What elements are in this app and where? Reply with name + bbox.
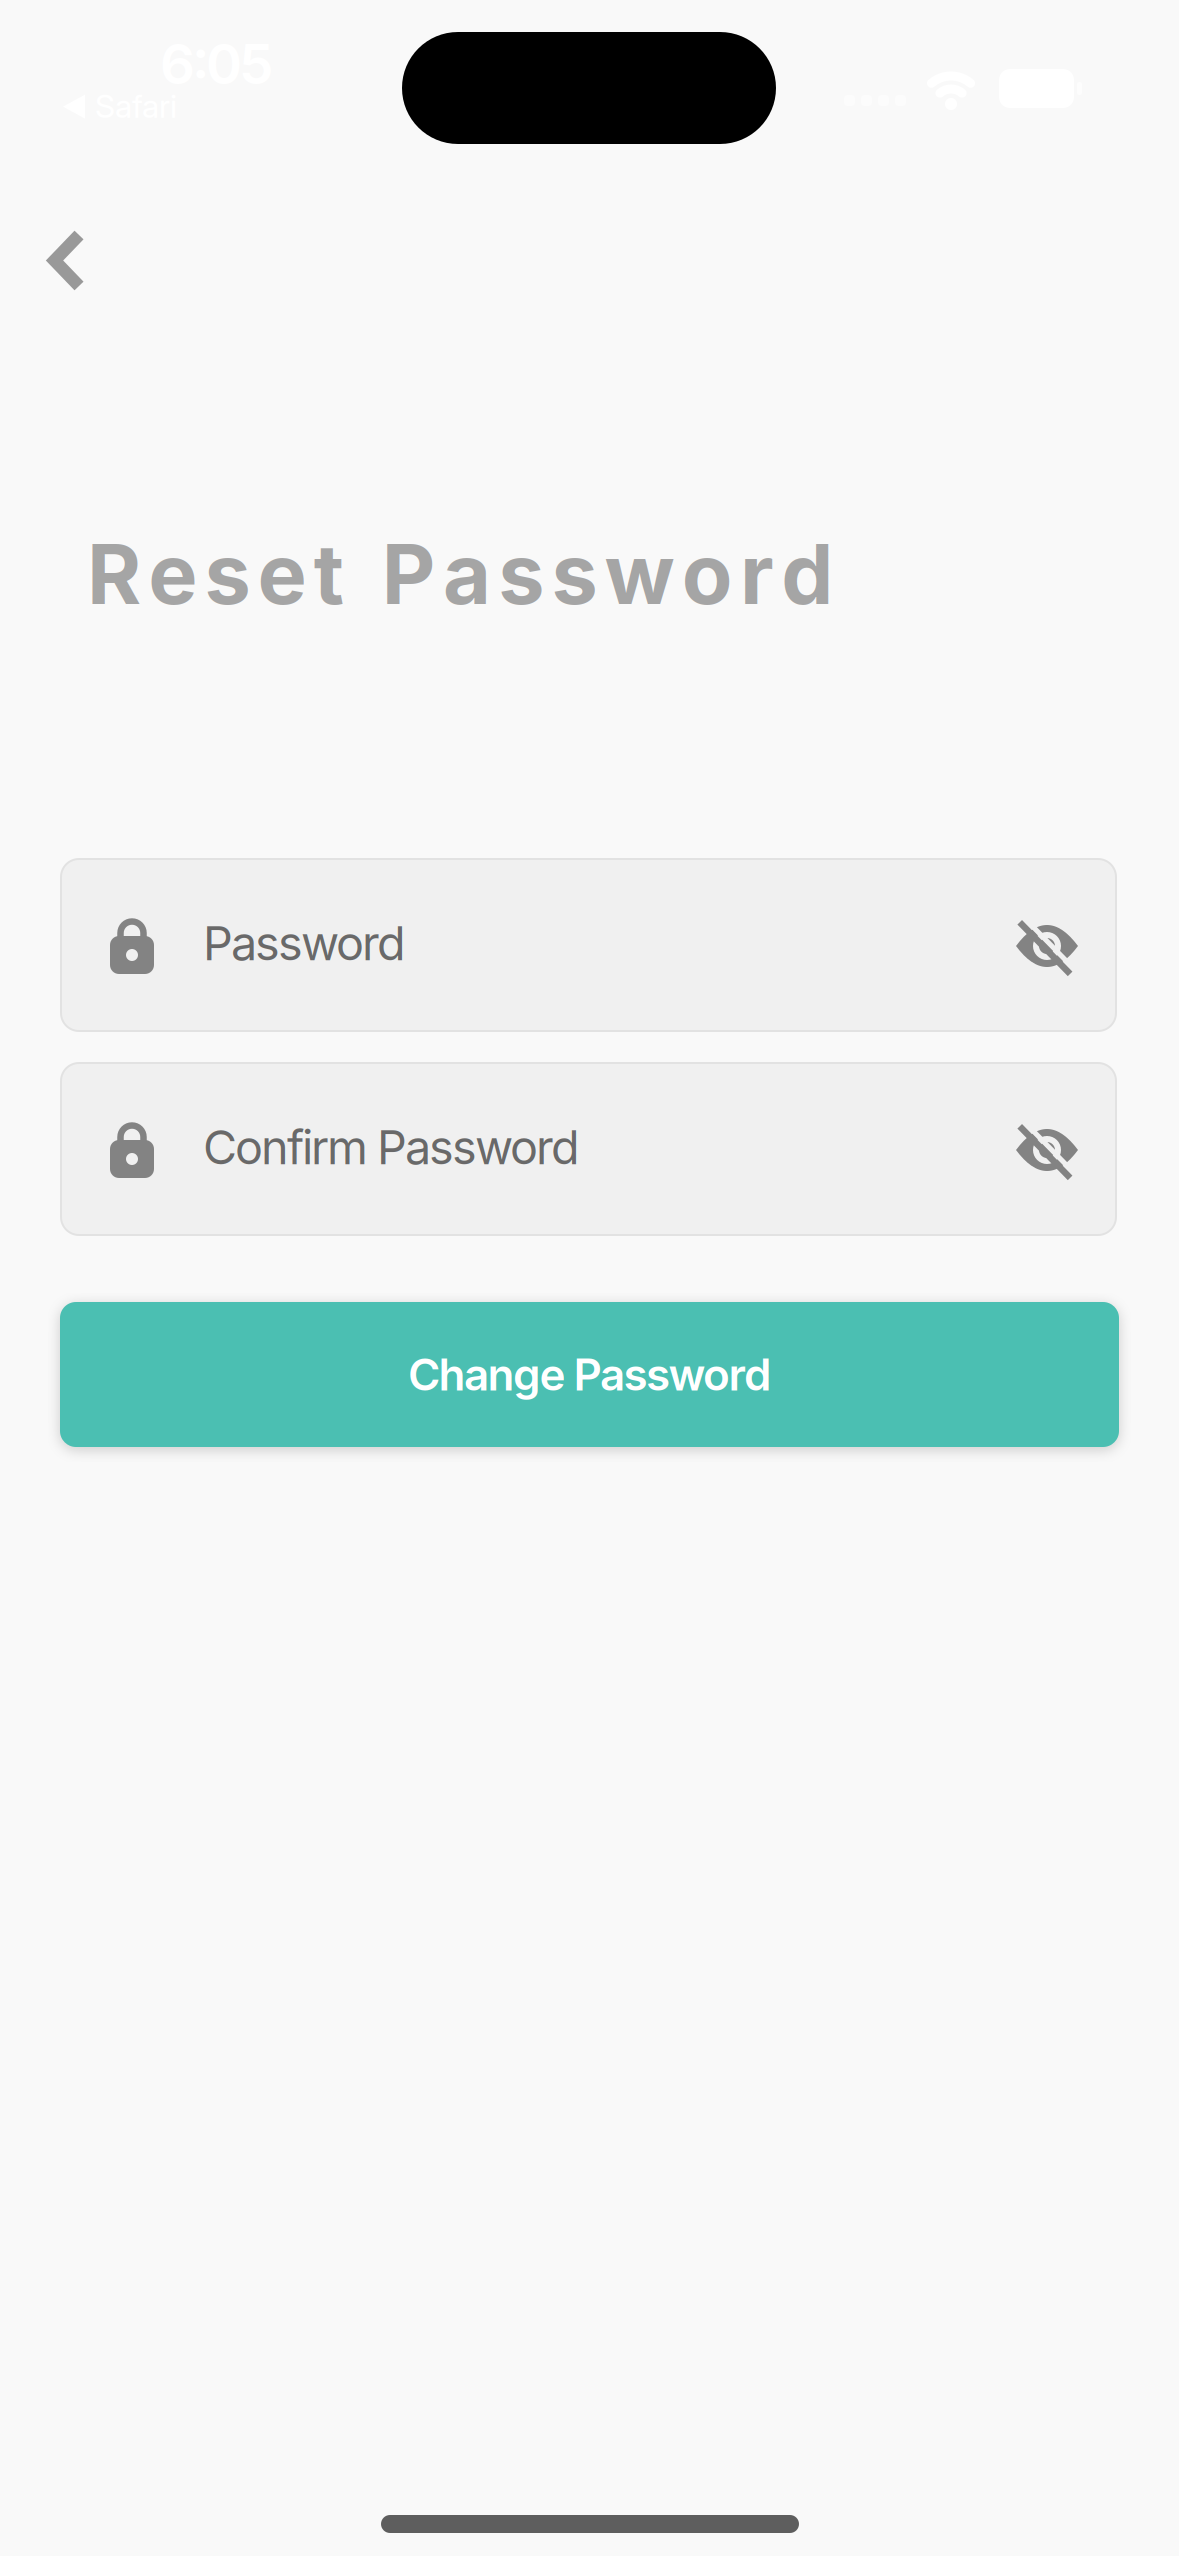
staticText: s <box>498 524 544 624</box>
staticText: a <box>443 524 491 624</box>
staticText: P <box>382 524 436 624</box>
staticText: s <box>551 524 597 624</box>
staticText: w <box>605 524 675 624</box>
staticText: Confirm Password <box>203 1119 580 1175</box>
staticText: s <box>204 524 250 624</box>
button[interactable]: Show password <box>1015 1118 1079 1182</box>
staticText: t <box>314 524 344 624</box>
staticText: r <box>740 524 774 624</box>
button[interactable]: Show password <box>1015 914 1079 978</box>
staticText: o <box>682 524 733 624</box>
staticText: d <box>781 524 833 624</box>
staticText: R <box>87 524 141 624</box>
staticText: e <box>258 524 307 624</box>
staticText: e <box>148 524 197 624</box>
button[interactable]: Back <box>26 209 107 312</box>
button[interactable]: Change Password <box>60 1302 1119 1447</box>
staticText: Password <box>203 915 406 971</box>
staticText: Change Password <box>408 1348 771 1401</box>
